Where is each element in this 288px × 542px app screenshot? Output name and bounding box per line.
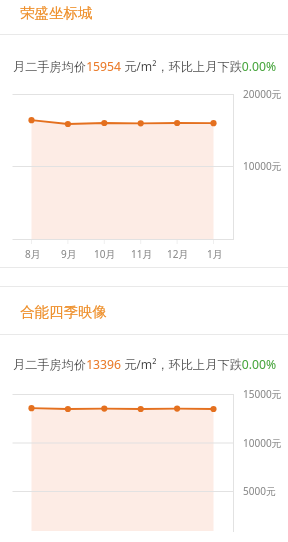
staticText: 月二手房均价15954 元/m²，环比上月下跌0.00% — [13, 58, 277, 75]
staticText: 5000元 — [243, 484, 276, 498]
button[interactable]: 合能四季映像 — [0, 300, 288, 330]
button[interactable]: 荣盛坐标城 — [0, 1, 288, 31]
staticText: 10000元 — [243, 159, 282, 173]
staticText: 月二手房均价13396 元/m²，环比上月下跌0.00% — [13, 356, 277, 373]
staticText: 9月 — [61, 247, 77, 261]
staticText: 10月 — [94, 247, 116, 261]
staticText: 1月 — [207, 247, 223, 261]
staticText: 合能四季映像 — [20, 303, 107, 321]
staticText: 8月 — [25, 247, 41, 261]
staticText: 20000元 — [243, 87, 282, 101]
staticText: 11月 — [131, 247, 153, 261]
staticText: 15000元 — [243, 387, 282, 401]
staticText: 10000元 — [243, 436, 282, 450]
staticText: 12月 — [167, 247, 189, 261]
staticText: 荣盛坐标城 — [20, 4, 93, 22]
